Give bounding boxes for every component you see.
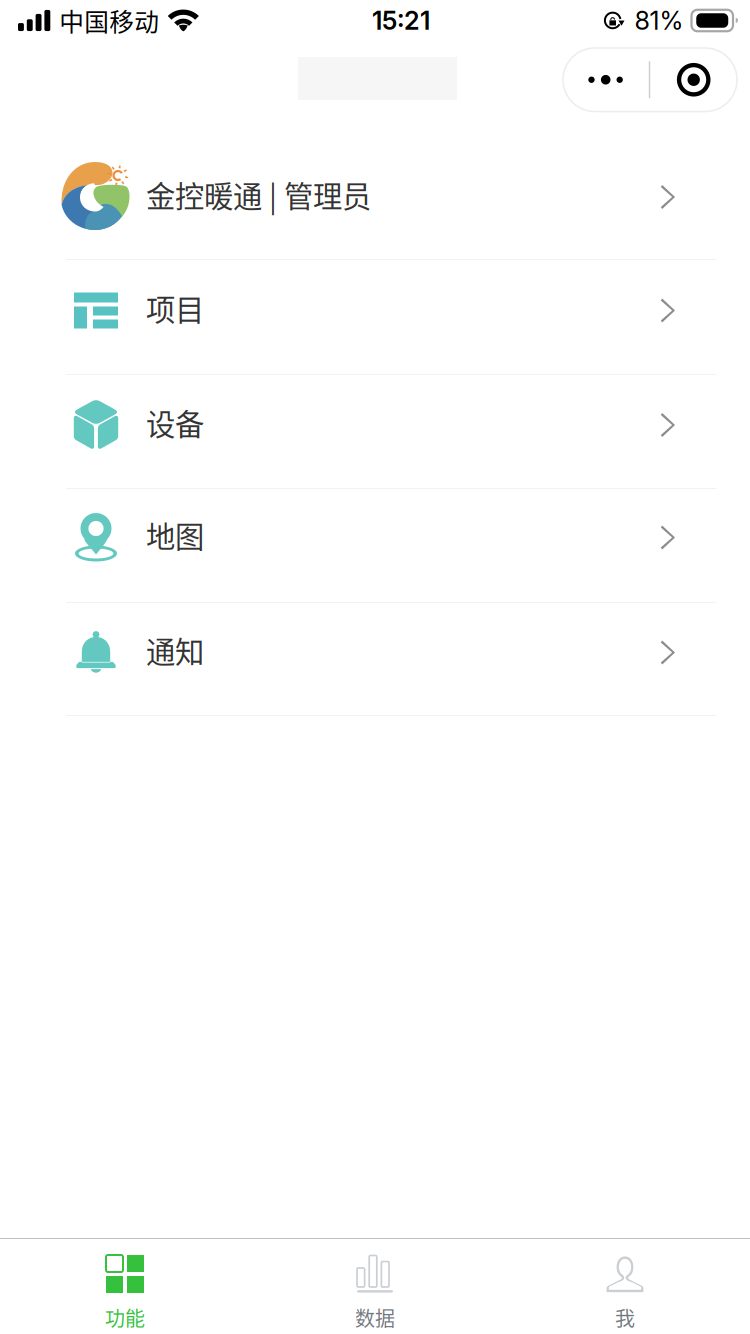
- staticText: 金控暖通 | 管理员: [146, 173, 371, 216]
- button[interactable]: 项目: [0, 260, 750, 375]
- button[interactable]: 我: [500, 1239, 750, 1334]
- staticText: 中国移动: [59, 3, 159, 38]
- staticText: 设备: [146, 401, 204, 444]
- staticText: 数据: [355, 1303, 395, 1332]
- staticText: 通知: [146, 629, 204, 671]
- button[interactable]: 地图: [0, 489, 750, 603]
- staticText: 我: [615, 1303, 635, 1332]
- button[interactable]: Close mini program: [650, 48, 737, 111]
- staticText: 81%: [634, 5, 683, 36]
- button[interactable]: More: [563, 48, 649, 111]
- button[interactable]: 数据: [250, 1239, 500, 1334]
- staticText: 地图: [146, 514, 204, 556]
- staticText: 15:21: [372, 5, 430, 36]
- button[interactable]: 设备: [0, 375, 750, 489]
- staticText: 项目: [146, 287, 204, 329]
- button[interactable]: 通知: [0, 603, 750, 716]
- button[interactable]: 金控暖通 | 管理员: [0, 135, 750, 260]
- staticText: 功能: [105, 1303, 145, 1332]
- button[interactable]: 功能: [0, 1239, 250, 1334]
